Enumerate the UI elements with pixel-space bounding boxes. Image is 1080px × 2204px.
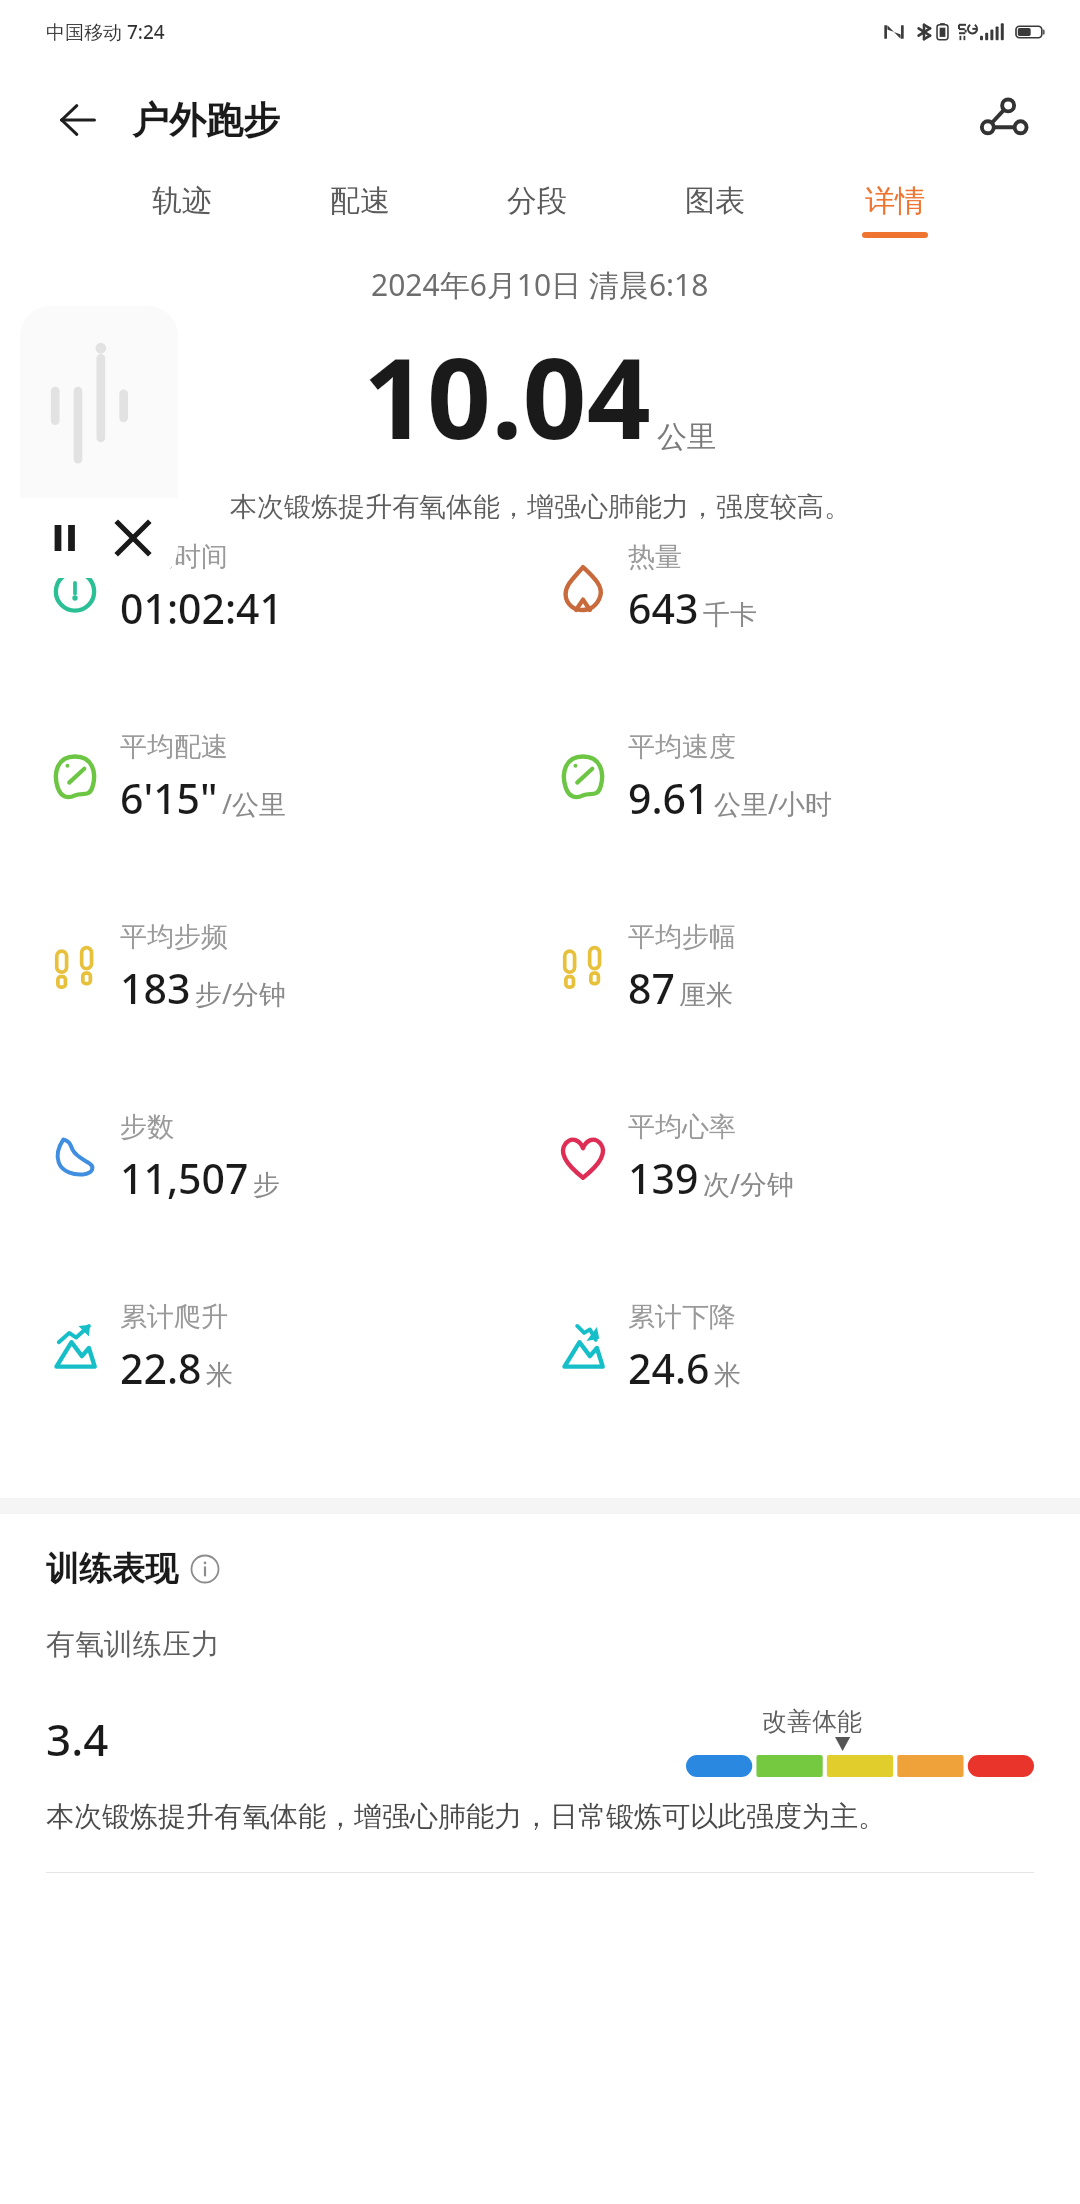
staticText: 配速: [330, 182, 390, 220]
button[interactable]: 轨迹: [150, 176, 214, 244]
staticText: 运动时间: [120, 540, 228, 574]
staticText: 6'15": [120, 770, 218, 826]
staticText: 11,507: [120, 1150, 249, 1206]
staticText: 轨迹: [152, 182, 212, 220]
staticText: 平均速度: [628, 730, 736, 764]
staticText: 平均步频: [120, 920, 228, 954]
staticText: 87: [628, 960, 675, 1016]
staticText: 24.6: [628, 1340, 710, 1396]
staticText: 累计爬升: [120, 1300, 228, 1334]
button[interactable]: 详情: [860, 176, 930, 244]
staticText: 平均步幅: [628, 920, 736, 954]
button[interactable]: 分段: [505, 176, 569, 244]
staticText: 本次锻炼提升有氧体能，增强心肺能力，日常锻炼可以此强度为主。: [46, 1799, 1034, 1834]
button[interactable]: Share: [970, 85, 1040, 155]
staticText: 热量: [628, 540, 682, 574]
button[interactable]: 平均配速: [46, 730, 540, 826]
staticText: 平均配速: [120, 730, 228, 764]
staticText: 厘米: [679, 978, 733, 1012]
button[interactable]: 热量: [554, 540, 1080, 636]
staticText: 22.8: [120, 1340, 202, 1396]
staticText: 公里: [657, 418, 717, 456]
staticText: 139: [628, 1150, 699, 1206]
staticText: 中国移动 7:24: [46, 19, 165, 45]
staticText: 米: [714, 1358, 741, 1392]
staticText: 有氧训练压力: [46, 1626, 220, 1663]
staticText: 户外跑步: [132, 97, 280, 144]
button[interactable]: 平均速度: [554, 730, 1080, 826]
staticText: 步数: [120, 1110, 174, 1144]
staticText: 10.04: [363, 319, 651, 472]
button[interactable]: Close: [110, 515, 156, 561]
staticText: 步/分钟: [195, 975, 287, 1012]
staticText: 图表: [685, 182, 745, 220]
staticText: 643: [628, 580, 699, 636]
staticText: 3.4: [46, 1709, 109, 1769]
staticText: 2024年6月10日 清晨6:18: [371, 264, 709, 305]
staticText: 米: [206, 1358, 233, 1392]
button[interactable]: 平均步幅: [554, 920, 1080, 1016]
button[interactable]: 平均步频: [46, 920, 540, 1016]
button[interactable]: 步数: [46, 1110, 540, 1206]
staticText: 平均心率: [628, 1110, 736, 1144]
button[interactable]: 平均心率: [554, 1110, 1080, 1206]
staticText: 183: [120, 960, 191, 1016]
staticText: 步: [253, 1168, 280, 1202]
button[interactable]: 累计爬升: [46, 1300, 540, 1396]
staticText: 改善体能: [762, 1706, 862, 1737]
staticText: /公里: [222, 785, 287, 822]
button[interactable]: 运动时间: [46, 540, 540, 636]
button[interactable]: 配速: [328, 176, 392, 244]
staticText: 详情: [865, 182, 925, 220]
staticText: 01:02:41: [120, 580, 284, 636]
button[interactable]: Pause: [42, 515, 88, 561]
button[interactable]: Back: [46, 92, 102, 148]
staticText: 千卡: [703, 598, 757, 632]
staticText: 9.61: [628, 770, 710, 826]
staticText: 累计下降: [628, 1300, 736, 1334]
staticText: 训练表现: [46, 1548, 178, 1590]
button[interactable]: 图表: [683, 176, 747, 244]
button[interactable]: 累计下降: [554, 1300, 1080, 1396]
staticText: 本次锻炼提升有氧体能，增强心肺能力，强度较高。: [230, 490, 851, 524]
staticText: 次/分钟: [703, 1165, 795, 1202]
button[interactable]: 训练表现: [46, 1548, 220, 1590]
staticText: 公里/小时: [714, 785, 833, 822]
staticText: 分段: [507, 182, 567, 220]
